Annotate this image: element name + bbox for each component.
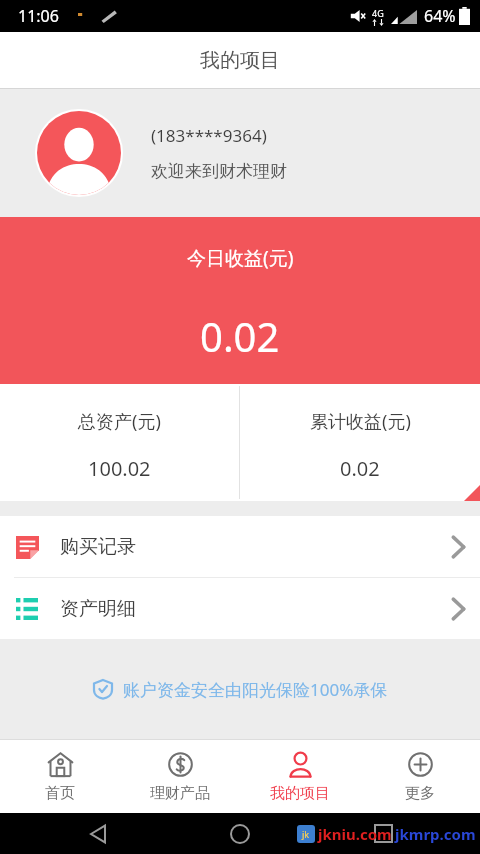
button[interactable]: 总资产(元) [0, 384, 239, 501]
other: Home [230, 824, 250, 844]
staticText: 0.02 [340, 455, 380, 482]
staticText: 今日收益(元) [187, 245, 294, 271]
staticText: jkmrp.com [395, 824, 476, 844]
staticText: 资产明细 [60, 597, 136, 621]
staticText: 64% [424, 5, 456, 27]
button[interactable]: 首页 [0, 739, 120, 813]
staticText: 4G [372, 7, 384, 19]
other: Back [88, 824, 108, 844]
staticText: (183****9364) [151, 124, 267, 147]
staticText: 欢迎来到财术理财 [151, 161, 287, 182]
staticText: 我的项目 [200, 48, 280, 73]
staticText: 100.02 [88, 455, 151, 482]
other: Recents [375, 825, 392, 842]
button[interactable]: 理财产品 [120, 739, 240, 813]
staticText: 理财产品 [150, 784, 210, 803]
staticText: 账户资金安全由阳光保险100%承保 [123, 678, 388, 701]
staticText: 11:06 [18, 5, 59, 27]
staticText: 总资产(元) [78, 409, 161, 434]
staticText: 0.02 [200, 309, 280, 363]
staticText: 首页 [45, 784, 75, 803]
button[interactable]: 我的项目 [240, 739, 360, 813]
staticText: jkniu.com [318, 824, 392, 844]
button[interactable]: 更多 [360, 739, 480, 813]
button[interactable]: 购买记录 [0, 516, 480, 577]
button[interactable]: 资产明细 [0, 578, 480, 639]
staticText: 我的项目 [270, 784, 330, 803]
staticText: jk [302, 828, 310, 840]
button[interactable]: 累计收益(元) [240, 384, 480, 501]
staticText: 更多 [405, 784, 435, 803]
staticText: 累计收益(元) [310, 409, 411, 434]
staticText: 购买记录 [60, 535, 136, 559]
